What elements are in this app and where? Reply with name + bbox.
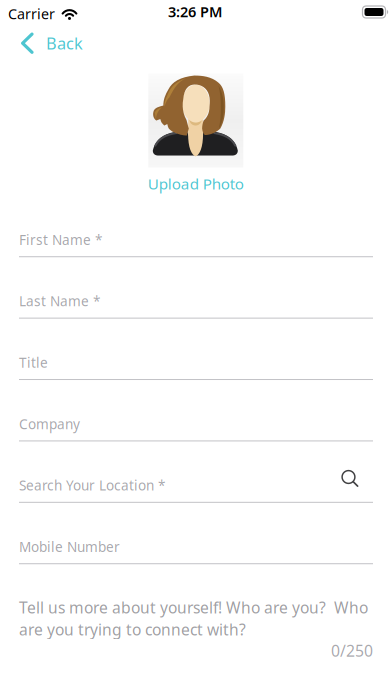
button[interactable]: Back [0,27,93,59]
staticText: Tell us more about yourself! Who are you… [19,596,368,640]
staticText: Title [19,353,48,372]
button[interactable]: First Name * [19,230,373,257]
staticText: 0/250 [331,640,373,661]
button[interactable]: Title [19,353,373,380]
button[interactable]: Mobile Number [19,537,373,564]
staticText: Carrier [8,4,55,23]
staticText: Back [46,32,83,54]
staticText: Upload Photo [148,173,244,194]
staticText: 3:26 PM [168,2,222,21]
staticText: Search Your Location * [19,476,165,494]
button[interactable]: Search Your Location * [19,476,373,503]
button[interactable]: Last Name * [19,292,373,319]
staticText: First Name * [19,230,102,249]
button[interactable]: Tell us more about yourself! Who are you… [19,596,379,640]
staticText: Last Name * [19,292,100,310]
button[interactable]: Company [19,415,373,441]
button[interactable]: Search [335,463,365,493]
staticText: Mobile Number [19,537,120,556]
staticText: Company [19,415,80,433]
button[interactable]: Upload Photo [148,73,244,194]
